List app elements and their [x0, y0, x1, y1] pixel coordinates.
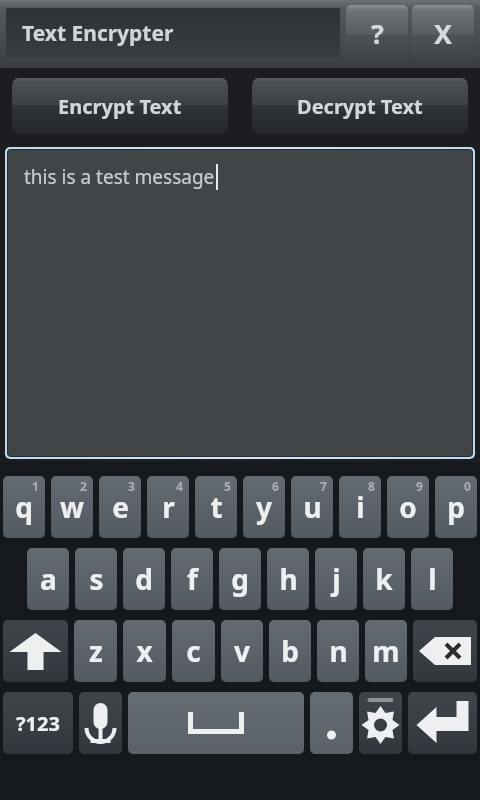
button[interactable]: t: [195, 476, 237, 538]
staticText: x: [136, 632, 153, 670]
staticText: f: [187, 560, 198, 598]
button[interactable]: u: [291, 476, 333, 538]
staticText: Decrypt Text: [297, 93, 423, 120]
button[interactable]: d: [123, 548, 165, 610]
button[interactable]: j: [315, 548, 357, 610]
button[interactable]: Voice input: [79, 692, 122, 754]
button[interactable]: a: [27, 548, 69, 610]
staticText: h: [279, 560, 298, 598]
button[interactable]: o: [387, 476, 429, 538]
staticText: 4: [176, 478, 183, 494]
staticText: 9: [416, 478, 423, 494]
button[interactable]: g: [219, 548, 261, 610]
button[interactable]: this is a test message: [8, 150, 472, 456]
button[interactable]: m: [365, 620, 407, 682]
staticText: X: [434, 15, 453, 52]
staticText: i: [356, 488, 365, 526]
staticText: w: [60, 488, 84, 526]
staticText: n: [329, 632, 348, 670]
staticText: c: [186, 632, 201, 670]
button[interactable]: n: [317, 620, 359, 682]
staticText: l: [428, 560, 437, 598]
staticText: 1: [32, 478, 39, 494]
button[interactable]: w: [51, 476, 93, 538]
button[interactable]: Backspace: [413, 620, 477, 682]
staticText: ?123: [16, 710, 60, 737]
button[interactable]: Text Encrypter: [6, 8, 340, 58]
button[interactable]: r: [147, 476, 189, 538]
button[interactable]: h: [267, 548, 309, 610]
button[interactable]: b: [269, 620, 311, 682]
button[interactable]: Shift: [3, 620, 68, 682]
staticText: r: [162, 488, 175, 526]
staticText: Text Encrypter: [22, 19, 174, 48]
staticText: 8: [368, 478, 375, 494]
button[interactable]: k: [363, 548, 405, 610]
staticText: b: [281, 632, 299, 670]
button[interactable]: i: [339, 476, 381, 538]
button[interactable]: e: [99, 476, 141, 538]
staticText: o: [399, 488, 417, 526]
staticText: a: [40, 560, 57, 598]
button[interactable]: Period: [310, 692, 353, 754]
button[interactable]: v: [221, 620, 263, 682]
staticText: v: [234, 632, 250, 670]
button[interactable]: p: [435, 476, 477, 538]
staticText: u: [303, 488, 322, 526]
button[interactable]: Help: [346, 5, 408, 61]
staticText: 0: [464, 478, 471, 494]
staticText: 6: [272, 478, 279, 494]
staticText: m: [372, 632, 400, 670]
staticText: 7: [320, 478, 327, 494]
button[interactable]: s: [75, 548, 117, 610]
staticText: k: [375, 560, 393, 598]
staticText: this is a test message: [24, 164, 215, 190]
button[interactable]: c: [172, 620, 215, 682]
button[interactable]: z: [74, 620, 117, 682]
button[interactable]: q: [3, 476, 45, 538]
staticText: q: [15, 488, 33, 526]
staticText: t: [210, 488, 223, 526]
staticText: j: [332, 560, 341, 598]
button[interactable]: Settings: [359, 692, 402, 754]
button[interactable]: y: [243, 476, 285, 538]
staticText: 5: [224, 478, 231, 494]
staticText: ?: [371, 15, 384, 52]
staticText: s: [89, 560, 104, 598]
button[interactable]: Close: [412, 5, 474, 61]
button[interactable]: Enter: [408, 692, 477, 754]
button[interactable]: f: [171, 548, 213, 610]
button[interactable]: Space: [128, 692, 304, 754]
staticText: y: [256, 488, 272, 526]
staticText: z: [89, 632, 103, 670]
button[interactable]: Decrypt Text: [252, 78, 468, 134]
button[interactable]: Encrypt Text: [12, 78, 228, 134]
staticText: 2: [80, 478, 87, 494]
button[interactable]: l: [411, 548, 453, 610]
staticText: Encrypt Text: [58, 93, 182, 120]
staticText: 3: [128, 478, 135, 494]
staticText: p: [447, 488, 465, 526]
button[interactable]: ?123: [3, 692, 73, 754]
button[interactable]: x: [123, 620, 166, 682]
staticText: e: [112, 488, 129, 526]
staticText: g: [231, 560, 249, 598]
staticText: d: [135, 560, 153, 598]
